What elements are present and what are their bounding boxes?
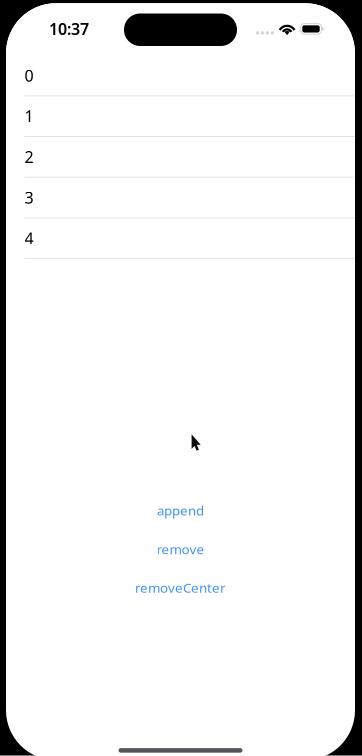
staticText: 4 (24, 228, 33, 249)
staticText: 0 (24, 65, 33, 86)
button[interactable]: removeCenter (6, 575, 355, 601)
staticText: 2 (24, 146, 33, 167)
staticText: removeCenter (135, 579, 226, 596)
staticText: 3 (24, 187, 33, 208)
staticText: 10:37 (49, 18, 89, 39)
staticText: 1 (24, 105, 33, 127)
staticText: remove (156, 540, 204, 558)
staticText: append (157, 501, 204, 519)
button[interactable]: append (6, 497, 355, 523)
button[interactable]: remove (6, 536, 355, 562)
